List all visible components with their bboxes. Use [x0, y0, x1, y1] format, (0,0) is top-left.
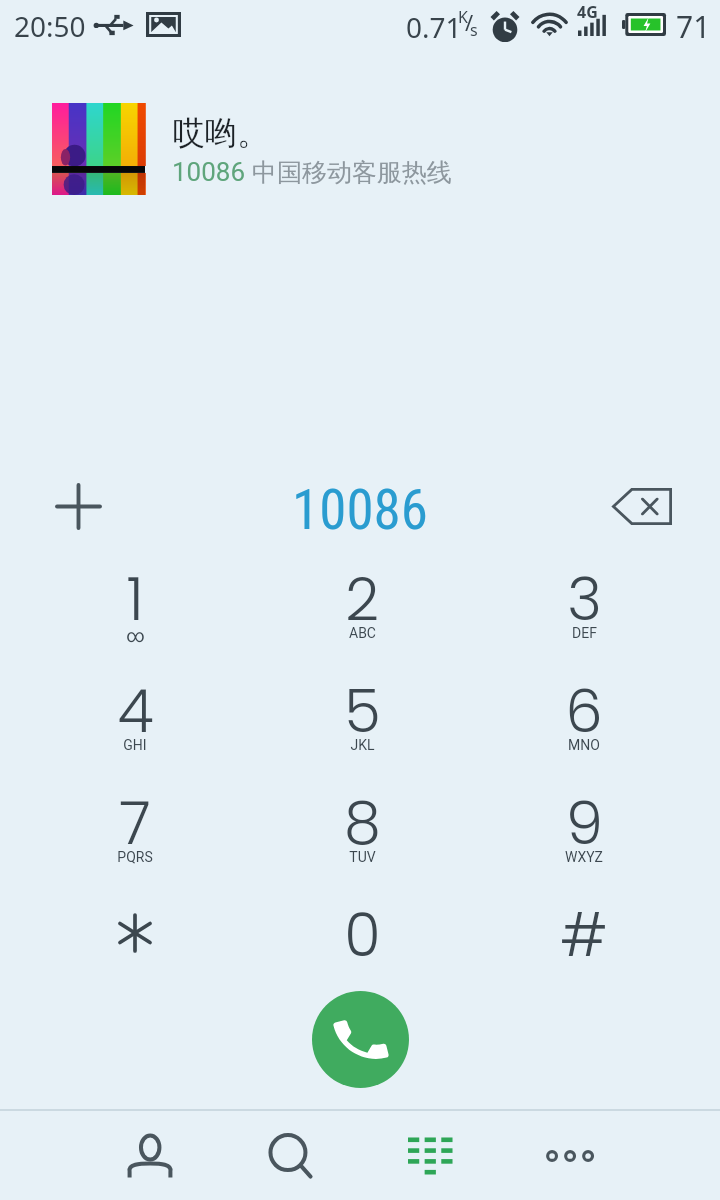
staticText: K	[458, 6, 468, 28]
button[interactable]: Call	[312, 991, 409, 1088]
staticText: ∞	[126, 625, 145, 646]
button[interactable]	[302, 654, 422, 762]
staticText: /	[465, 7, 474, 37]
staticText: MNO	[568, 737, 600, 753]
button[interactable]	[75, 878, 195, 986]
staticText: 5	[344, 670, 381, 742]
staticText: TUV	[349, 849, 376, 865]
staticText: 8	[344, 782, 381, 854]
button[interactable]: Dialpad	[372, 1111, 488, 1200]
button[interactable]: Delete	[591, 456, 692, 557]
button[interactable]	[75, 654, 195, 762]
button[interactable]	[302, 542, 422, 650]
button[interactable]: More	[512, 1111, 628, 1200]
button[interactable]	[524, 878, 644, 986]
staticText: 9	[566, 782, 603, 854]
button[interactable]	[75, 766, 195, 874]
button[interactable]: Search	[231, 1111, 347, 1200]
staticText: ABC	[349, 625, 376, 641]
staticText: 3	[567, 558, 602, 630]
staticText: 71	[676, 6, 711, 47]
staticText: PQRS	[117, 849, 153, 865]
staticText: 4G	[577, 1, 598, 23]
staticText: 10086	[172, 157, 246, 187]
staticText: 20:50	[14, 7, 86, 45]
staticText: 7	[119, 782, 151, 854]
staticText: 2	[345, 558, 379, 630]
staticText: GHI	[123, 737, 147, 753]
staticText: 6	[565, 670, 603, 742]
button[interactable]: Contacts	[92, 1111, 208, 1200]
button[interactable]	[524, 654, 644, 762]
staticText: 0	[344, 894, 381, 966]
staticText: 1	[126, 558, 144, 630]
button[interactable]: Add to contacts	[28, 456, 129, 557]
staticText: 4	[117, 670, 154, 742]
staticText: WXYZ	[565, 849, 603, 865]
button[interactable]: 哎哟。	[0, 88, 720, 210]
button[interactable]	[75, 542, 195, 650]
staticText: JKL	[350, 737, 375, 753]
staticText: 0.71	[406, 8, 462, 46]
staticText: 10086	[292, 478, 428, 538]
button[interactable]	[524, 766, 644, 874]
button[interactable]	[302, 766, 422, 874]
staticText: s	[470, 19, 478, 41]
staticText: 中国移动客服热线	[252, 157, 452, 188]
button[interactable]	[302, 878, 422, 986]
staticText: #	[560, 894, 608, 966]
staticText: 哎哟。	[173, 113, 269, 153]
button[interactable]	[524, 542, 644, 650]
staticText: DEF	[572, 625, 597, 641]
